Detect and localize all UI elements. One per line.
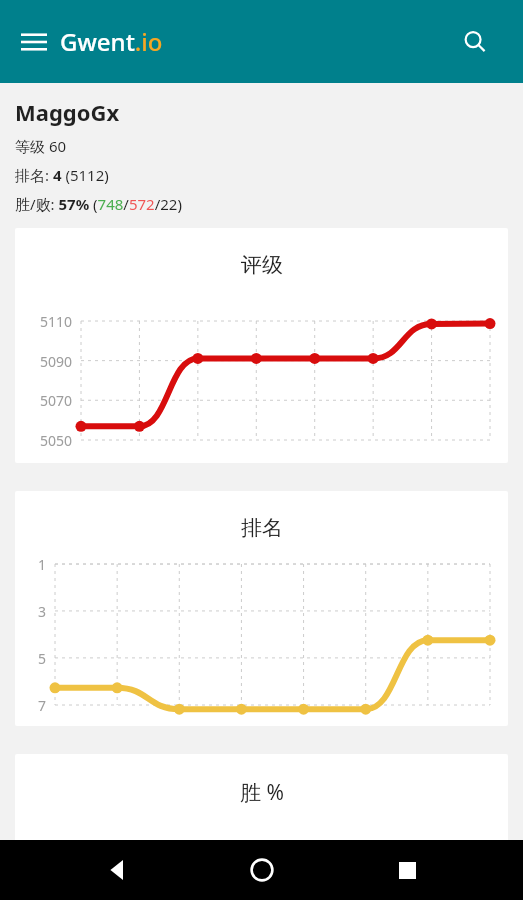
staticText: 胜 % — [240, 778, 284, 807]
button[interactable]: 评级 — [15, 228, 508, 463]
button[interactable]: 排名 — [15, 491, 508, 726]
staticText: 胜/败: 57% (748/572/22) — [15, 194, 182, 214]
button[interactable]: Search — [453, 20, 497, 64]
button[interactable]: Back — [90, 842, 146, 898]
staticText: MaggoGx — [15, 97, 120, 127]
staticText: 5070 — [40, 391, 73, 410]
staticText: 3 — [38, 602, 47, 621]
staticText: 5050 — [40, 431, 73, 450]
staticText: 5 — [38, 649, 47, 668]
staticText: 排名 — [241, 515, 283, 541]
staticText: 5110 — [40, 312, 73, 331]
staticText: 排名: 4 (5112) — [15, 165, 109, 185]
button[interactable]: Open navigation menu — [12, 20, 56, 64]
staticText: 评级 — [241, 252, 283, 278]
staticText: 7 — [38, 696, 47, 715]
staticText: 1 — [38, 555, 47, 574]
button[interactable]: Home — [234, 842, 290, 898]
staticText: 等级 60 — [15, 136, 67, 156]
button[interactable]: 胜 % — [15, 754, 508, 874]
staticText: Gwent.io — [60, 25, 163, 58]
staticText: 5090 — [40, 352, 73, 371]
button[interactable]: Recent apps — [379, 842, 435, 898]
